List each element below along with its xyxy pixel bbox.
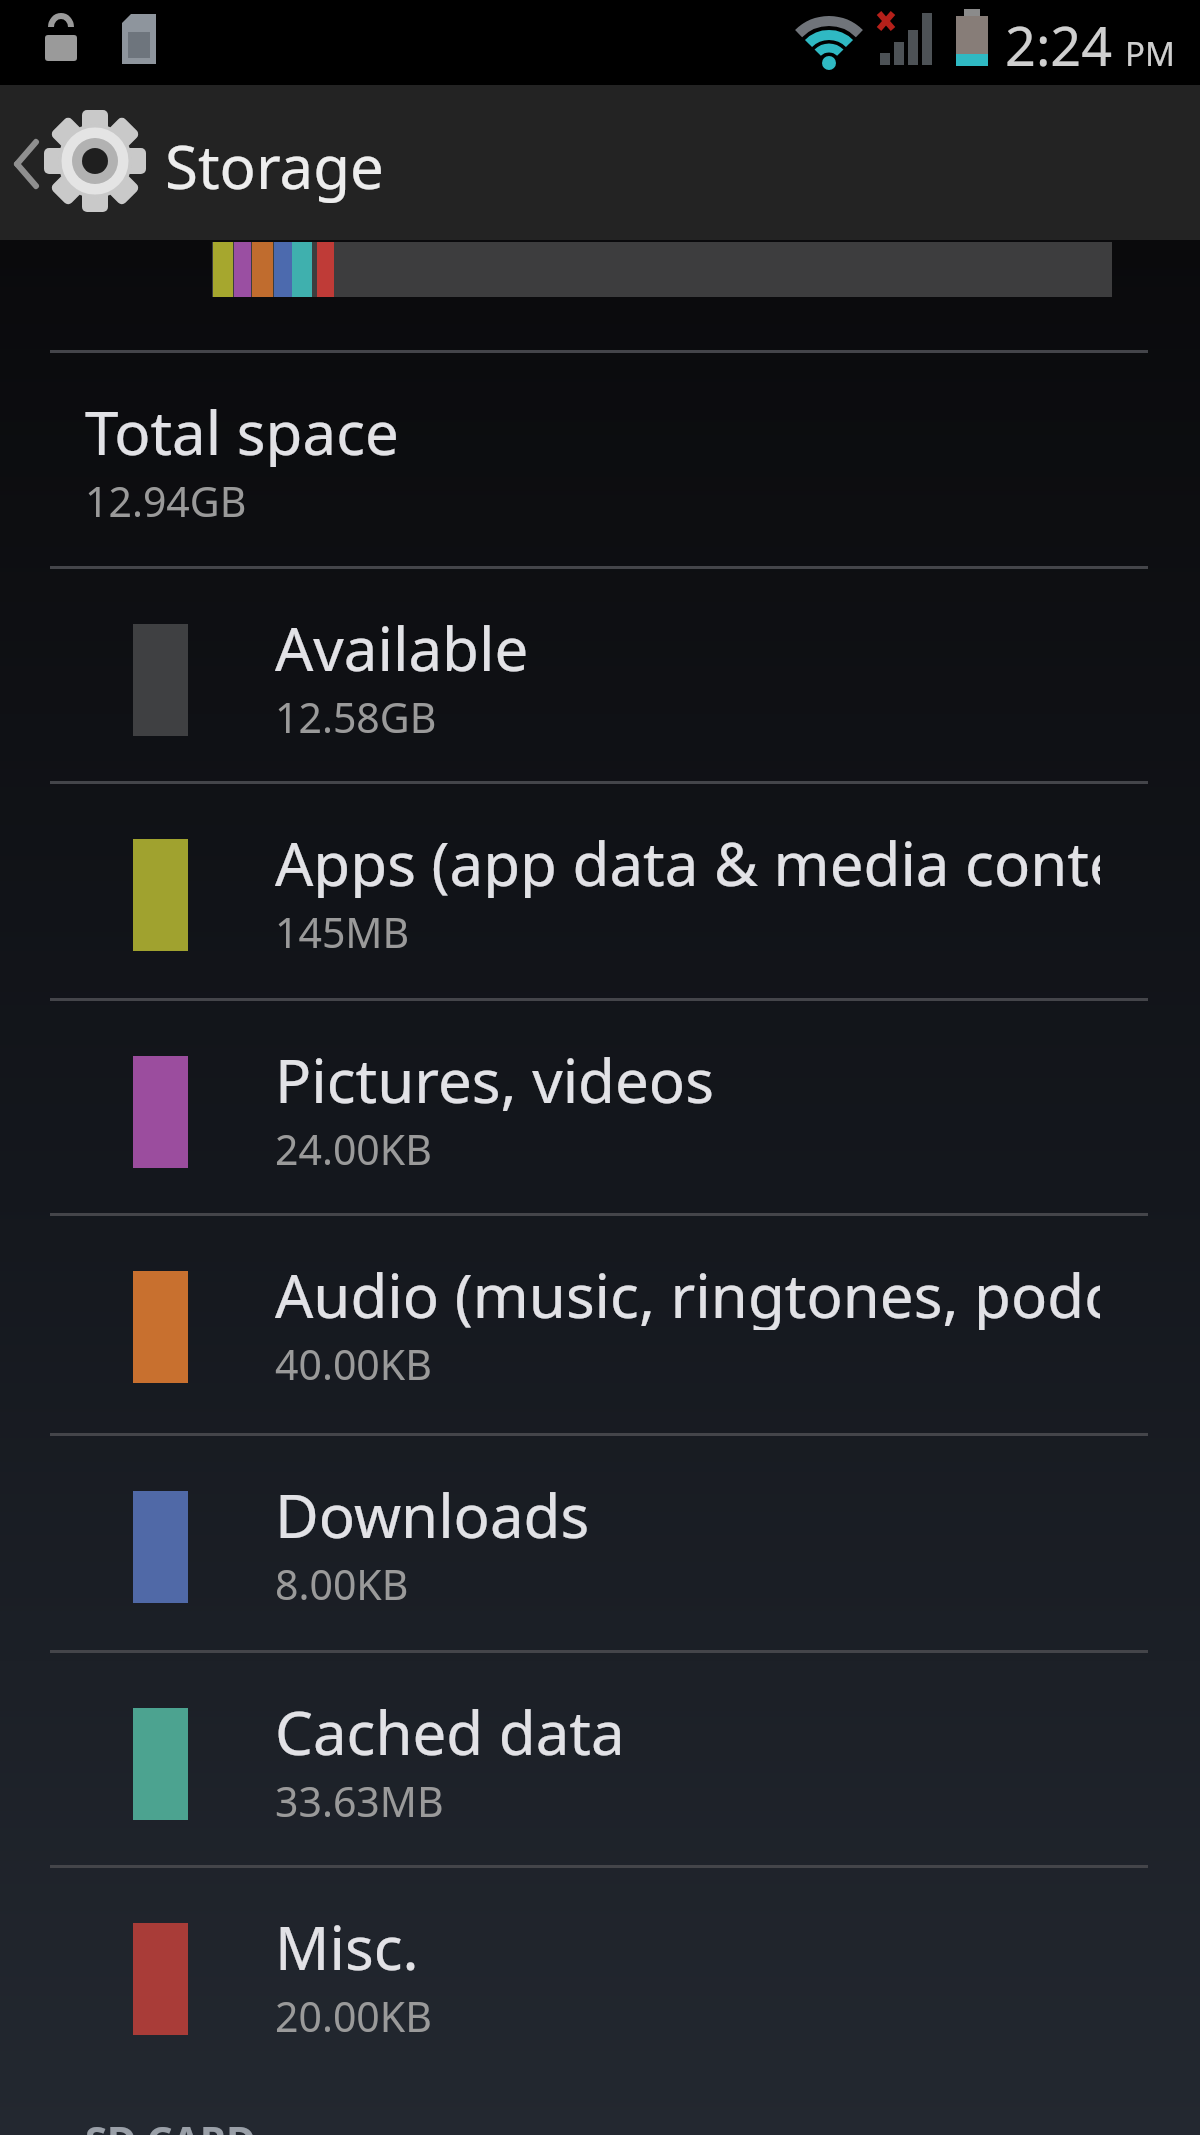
button[interactable]: Audio (music, ringtones, podcasts, etc.) [0, 1216, 1200, 1428]
staticText: 145MB [275, 904, 410, 960]
staticText: 12.58GB [275, 689, 437, 745]
staticText: 24.00KB [275, 1121, 432, 1177]
button[interactable]: Available [0, 569, 1200, 781]
button[interactable]: Downloads [0, 1436, 1200, 1648]
button[interactable] [0, 85, 400, 240]
staticText: Storage [165, 125, 384, 207]
staticText: Downloads [275, 1474, 590, 1550]
staticText: 8.00KB [275, 1556, 409, 1612]
staticText: Total space [85, 391, 399, 467]
staticText: Audio (music, ringtones, podcasts, etc.) [275, 1254, 1100, 1330]
button[interactable]: Total space [0, 353, 1200, 565]
button[interactable]: Cached data [0, 1653, 1200, 1865]
staticText: Cached data [275, 1691, 625, 1767]
button[interactable]: Apps (app data & media content) [0, 784, 1200, 996]
staticText: Apps (app data & media content) [275, 822, 1100, 898]
staticText: Pictures, videos [275, 1039, 714, 1115]
button[interactable]: Misc. [0, 1868, 1200, 2080]
staticText: 40.00KB [275, 1336, 432, 1392]
staticText: 12.94GB [85, 473, 247, 529]
staticText: PM [1125, 31, 1175, 76]
staticText: 20.00KB [275, 1988, 432, 2044]
staticText: 33.63MB [275, 1773, 444, 1829]
staticText: Misc. [275, 1906, 419, 1982]
staticText: Available [275, 607, 529, 683]
staticText: 2:24 [1005, 8, 1113, 82]
staticText: SD CARD [85, 2112, 256, 2135]
button[interactable]: Pictures, videos [0, 1001, 1200, 1213]
